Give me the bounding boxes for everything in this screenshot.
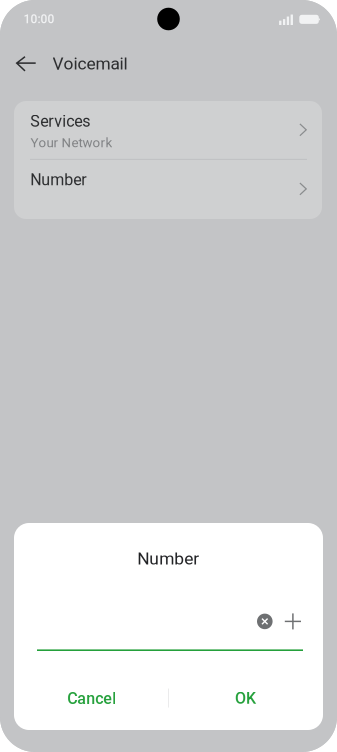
- staticText: Number: [30, 170, 86, 189]
- staticText: 10:00: [23, 12, 54, 26]
- button[interactable]: Clear text: [252, 608, 278, 634]
- staticText: Cancel: [67, 689, 116, 708]
- button[interactable]: Add number: [280, 608, 306, 634]
- button[interactable]: Back: [6, 43, 46, 83]
- staticText: Voicemail: [53, 53, 128, 74]
- staticText: OK: [235, 689, 256, 708]
- staticText: Number: [137, 548, 199, 569]
- button[interactable]: Cancel: [14, 676, 168, 722]
- staticText: Services: [30, 112, 90, 131]
- button[interactable]: OK: [168, 676, 323, 722]
- button[interactable]: Services: [14, 101, 322, 159]
- button[interactable]: Number: [14, 160, 322, 220]
- staticText: Your Network: [30, 135, 112, 151]
